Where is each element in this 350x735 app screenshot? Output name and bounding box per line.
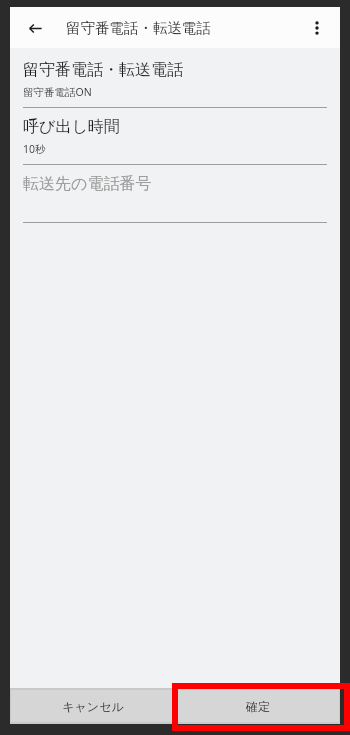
- staticText: 確定: [246, 699, 270, 714]
- staticText: 転送先の電話番号: [23, 174, 152, 194]
- button[interactable]: 呼び出し時間: [10, 108, 340, 164]
- button[interactable]: 留守番電話・転送電話: [10, 51, 340, 107]
- staticText: 留守番電話ON: [23, 85, 92, 99]
- button[interactable]: キャンセル: [11, 690, 174, 722]
- staticText: 呼び出し時間: [23, 117, 120, 137]
- staticText: 10秒: [23, 142, 46, 156]
- button[interactable]: 確定: [176, 690, 339, 722]
- button[interactable]: 転送先の電話番号: [10, 165, 340, 222]
- staticText: キャンセル: [62, 699, 124, 714]
- staticText: 留守番電話・転送電話: [66, 19, 211, 37]
- staticText: 留守番電話・転送電話: [23, 60, 183, 80]
- button[interactable]: More options: [302, 13, 332, 43]
- button[interactable]: Back: [20, 13, 50, 43]
